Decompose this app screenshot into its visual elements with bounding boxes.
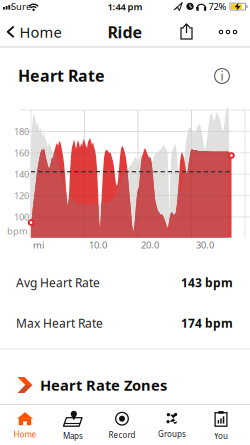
staticText: Groups — [158, 429, 186, 439]
staticText: mi — [33, 239, 44, 251]
staticText: 72% — [208, 0, 226, 13]
staticText: 20.0 — [141, 239, 159, 251]
button[interactable]: Maps — [49, 407, 97, 445]
button[interactable]: You — [197, 407, 245, 445]
staticText: Ride — [107, 21, 142, 43]
staticText: Max Heart Rate — [16, 315, 103, 331]
button[interactable]: Heart Rate Zones — [17, 373, 250, 397]
staticText: Heart Rate — [18, 65, 105, 86]
button[interactable]: About Heart Rate — [214, 68, 230, 84]
staticText: Home — [19, 22, 61, 42]
button[interactable]: Home — [1, 407, 49, 445]
button[interactable]: More — [218, 29, 237, 35]
button[interactable]: Share — [180, 23, 192, 39]
staticText: 143 bpm — [181, 274, 233, 290]
button[interactable]: Back — [4, 20, 64, 44]
button[interactable]: Record — [98, 407, 146, 445]
staticText: 140 — [14, 168, 29, 180]
staticText: 180 — [14, 125, 29, 138]
staticText: 1:44 pm — [107, 0, 142, 13]
staticText: Avg Heart Rate — [16, 274, 100, 290]
staticText: Home — [13, 429, 36, 440]
staticText: 120 — [14, 189, 29, 202]
staticText: Record — [108, 430, 135, 440]
staticText: Sure — [11, 0, 31, 13]
staticText: 30.0 — [196, 239, 214, 251]
staticText: 174 bpm — [181, 315, 233, 331]
staticText: Maps — [63, 431, 83, 441]
staticText: 100 — [14, 211, 29, 223]
staticText: Heart Rate Zones — [40, 375, 167, 395]
button[interactable]: Groups — [148, 407, 196, 445]
staticText: 10.0 — [89, 239, 107, 251]
staticText: bpm — [7, 225, 28, 237]
staticText: i — [220, 68, 223, 84]
staticText: You — [214, 431, 228, 441]
staticText: 160 — [14, 147, 29, 159]
